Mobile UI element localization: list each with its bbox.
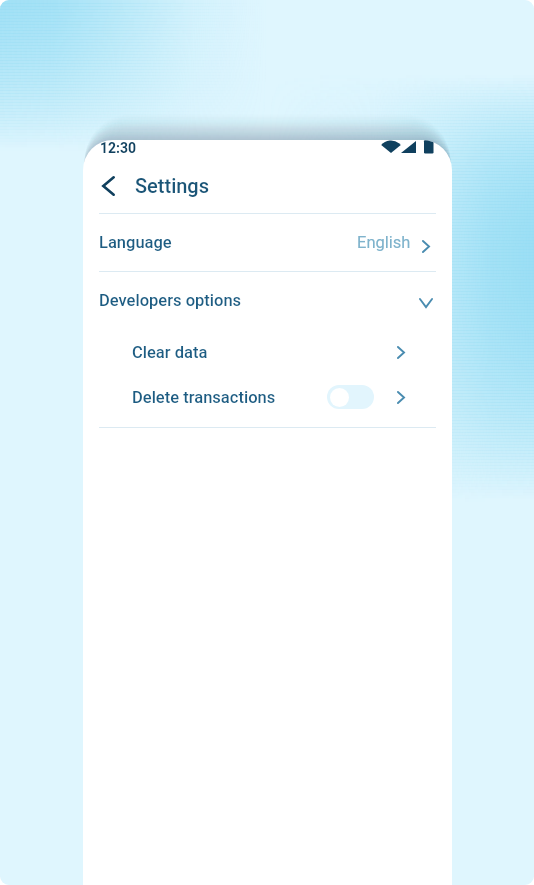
staticText: Delete transactions <box>132 388 276 407</box>
staticText: Settings <box>135 174 210 197</box>
button[interactable]: Back <box>86 164 130 208</box>
button[interactable]: Language <box>83 214 452 271</box>
staticText: Language <box>99 233 172 252</box>
button[interactable]: Clear data <box>83 337 452 367</box>
staticText: English <box>357 233 411 252</box>
staticText: 12:30 <box>100 140 137 156</box>
staticText: Developers options <box>99 291 242 310</box>
staticText: Clear data <box>132 343 208 362</box>
button[interactable]: Delete transactions <box>83 382 452 412</box>
button[interactable]: Developers options <box>83 272 452 328</box>
button[interactable]: Delete transactions toggle <box>327 385 374 409</box>
